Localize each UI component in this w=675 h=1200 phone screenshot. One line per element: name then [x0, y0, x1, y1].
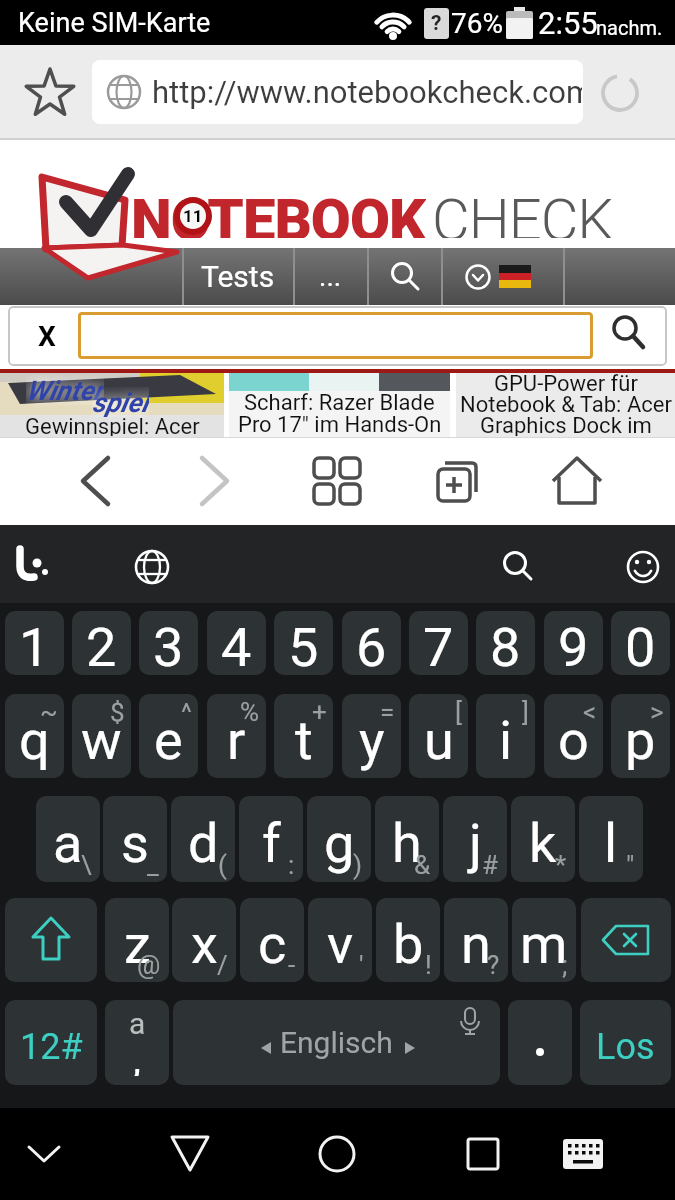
- button[interactable]: n: [444, 898, 508, 982]
- staticText: 9: [558, 616, 589, 675]
- staticText: 5: [288, 616, 319, 675]
- button[interactable]: d: [171, 796, 235, 882]
- button[interactable]: [508, 1000, 572, 1085]
- staticText: Pro 17" im Hands-On: [238, 412, 442, 435]
- button[interactable]: g: [307, 796, 371, 882]
- button[interactable]: a: [105, 1000, 169, 1085]
- staticText: x: [191, 913, 218, 976]
- staticText: p: [625, 709, 656, 772]
- button[interactable]: [307, 1124, 367, 1184]
- button[interactable]: Englisch: [173, 1000, 500, 1085]
- staticText: ,: [133, 1036, 141, 1076]
- button[interactable]: h: [375, 796, 439, 882]
- staticText: ~: [40, 697, 58, 727]
- button[interactable]: y: [342, 694, 401, 778]
- staticText: _: [147, 850, 159, 880]
- staticText: NOTEBOOK: [131, 186, 426, 238]
- button[interactable]: a: [36, 796, 100, 882]
- button[interactable]: j: [443, 796, 507, 882]
- button[interactable]: m: [512, 898, 576, 982]
- button[interactable]: b: [376, 898, 440, 982]
- button[interactable]: v: [308, 898, 372, 982]
- button[interactable]: Tests: [183, 248, 293, 305]
- staticText: [: [455, 697, 462, 727]
- button[interactable]: [175, 439, 255, 523]
- button[interactable]: c: [240, 898, 304, 982]
- staticText: /: [217, 950, 228, 980]
- button[interactable]: 5: [274, 611, 333, 675]
- staticText: 6: [356, 616, 387, 675]
- button[interactable]: [160, 1124, 220, 1184]
- button[interactable]: Winter: [0, 373, 224, 437]
- button[interactable]: [4, 539, 64, 591]
- button[interactable]: [581, 898, 671, 982]
- button[interactable]: t: [274, 694, 333, 778]
- button[interactable]: 0: [611, 611, 670, 675]
- button[interactable]: x: [172, 898, 236, 982]
- button[interactable]: r: [207, 694, 266, 778]
- button[interactable]: 6: [342, 611, 401, 675]
- button[interactable]: ...: [294, 248, 367, 305]
- button[interactable]: Scharf: Razer Blade: [229, 373, 450, 437]
- button[interactable]: 7: [409, 611, 468, 675]
- staticText: b: [393, 913, 424, 976]
- staticText: X: [38, 320, 56, 353]
- staticText: ": [626, 850, 635, 880]
- button[interactable]: o: [544, 694, 603, 778]
- staticText: ^: [181, 697, 192, 727]
- staticText: 76%: [451, 7, 503, 40]
- staticText: v: [327, 913, 354, 976]
- button[interactable]: 9: [544, 611, 603, 675]
- button[interactable]: [78, 312, 593, 359]
- button[interactable]: k: [511, 796, 575, 882]
- staticText: s: [121, 812, 149, 875]
- staticText: ?: [487, 950, 500, 980]
- staticText: *: [555, 850, 567, 880]
- button[interactable]: [608, 313, 652, 357]
- button[interactable]: q: [5, 694, 64, 778]
- button[interactable]: http://www.notebookcheck.com: [92, 60, 583, 124]
- staticText: http://www.notebookcheck.com: [152, 74, 582, 110]
- button[interactable]: [14, 1124, 74, 1184]
- button[interactable]: [442, 248, 563, 305]
- button[interactable]: p: [611, 694, 670, 778]
- button[interactable]: [537, 439, 617, 523]
- button[interactable]: [124, 547, 180, 587]
- button[interactable]: l: [579, 796, 643, 882]
- button[interactable]: [617, 547, 669, 587]
- button[interactable]: [297, 439, 377, 523]
- button[interactable]: [453, 1124, 513, 1184]
- button[interactable]: GPU-Power für: [456, 373, 675, 437]
- staticText: $: [110, 697, 125, 727]
- button[interactable]: i: [476, 694, 535, 778]
- staticText: 3: [153, 616, 184, 675]
- button[interactable]: e: [139, 694, 198, 778]
- staticText: d: [188, 812, 219, 875]
- button[interactable]: [600, 73, 640, 113]
- button[interactable]: Los: [580, 1000, 671, 1085]
- button[interactable]: 1: [5, 611, 64, 675]
- button[interactable]: 3: [139, 611, 198, 675]
- staticText: =: [380, 697, 395, 727]
- staticText: 11: [183, 206, 203, 226]
- staticText: 1: [19, 616, 50, 675]
- button[interactable]: [24, 66, 76, 118]
- button[interactable]: 8: [476, 611, 535, 675]
- staticText: m: [520, 913, 568, 976]
- button[interactable]: [553, 1124, 613, 1184]
- button[interactable]: [55, 439, 135, 523]
- button[interactable]: 4: [207, 611, 266, 675]
- button[interactable]: f: [239, 796, 303, 882]
- button[interactable]: u: [409, 694, 468, 778]
- staticText: Englisch: [280, 1025, 393, 1060]
- button[interactable]: 2: [72, 611, 131, 675]
- button[interactable]: w: [72, 694, 131, 778]
- button[interactable]: [417, 439, 497, 523]
- button[interactable]: 12#: [5, 1000, 97, 1085]
- button[interactable]: [5, 898, 97, 982]
- button[interactable]: [368, 248, 441, 305]
- button[interactable]: [492, 547, 544, 587]
- button[interactable]: z: [105, 898, 169, 982]
- button[interactable]: s: [103, 796, 167, 882]
- staticText: GPU-Power für: [494, 371, 638, 394]
